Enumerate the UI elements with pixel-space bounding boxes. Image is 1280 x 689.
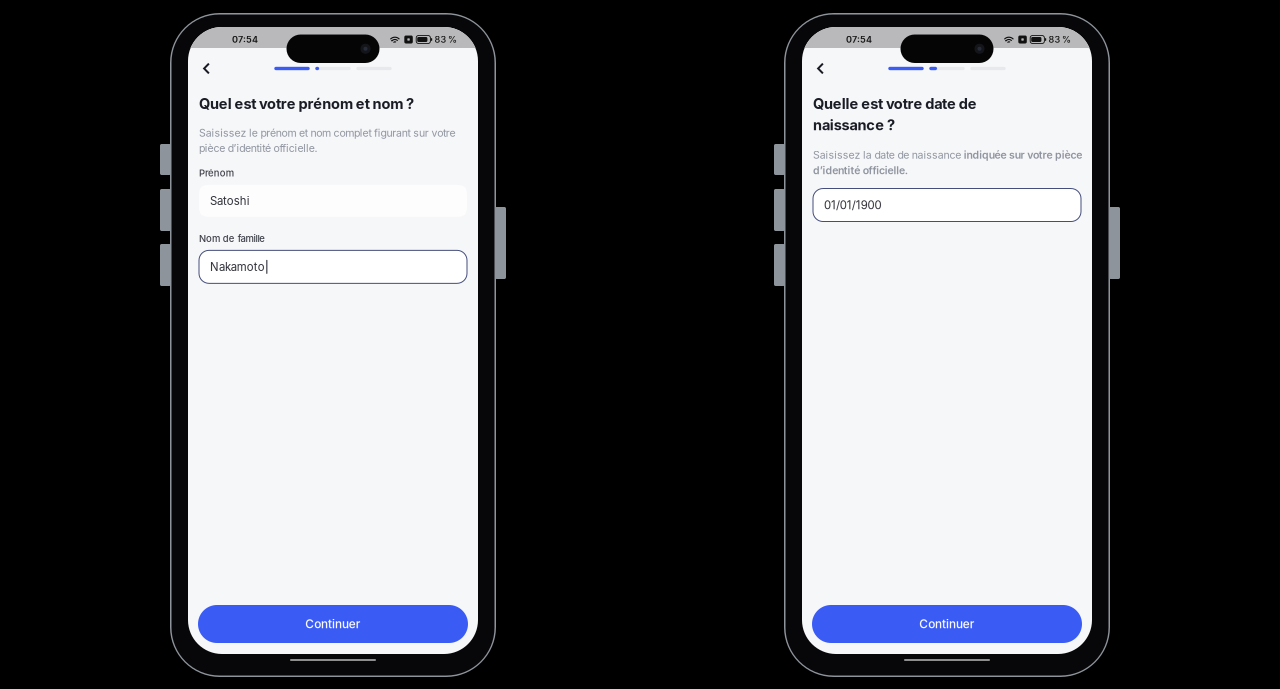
button[interactable]: Continuer: [198, 605, 468, 643]
staticText: 07:54: [846, 34, 872, 45]
staticText: Nakamoto: [210, 260, 265, 274]
staticText: Prénom: [199, 167, 234, 179]
button[interactable]: Continuer: [812, 605, 1082, 643]
button[interactable]: Retour: [808, 56, 832, 81]
staticText: 83 %: [1049, 34, 1071, 45]
staticText: Continuer: [305, 617, 361, 631]
staticText: Nom de famille: [199, 233, 265, 244]
staticText: 01/01/1900: [824, 198, 882, 212]
staticText: Continuer: [919, 617, 975, 631]
staticText: Saisissez la date de naissance indiquée …: [813, 149, 1082, 177]
button[interactable]: Retour: [194, 56, 218, 81]
staticText: Saisissez le prénom et nom complet figur…: [199, 127, 456, 154]
staticText: Quel est votre prénom et nom ?: [199, 95, 414, 113]
staticText: 83 %: [435, 34, 457, 45]
staticText: 07:54: [232, 34, 258, 45]
staticText: Quelle est votre date de naissance ?: [813, 95, 977, 134]
staticText: Satoshi: [210, 194, 250, 208]
